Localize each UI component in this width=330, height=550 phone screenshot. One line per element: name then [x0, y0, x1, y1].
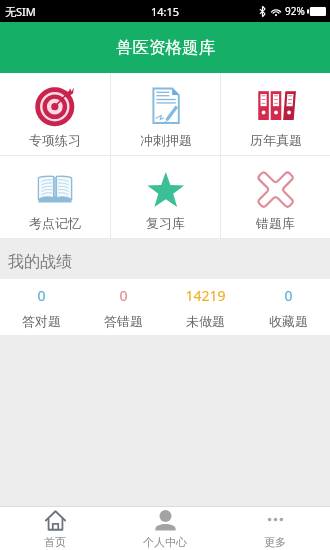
button[interactable]: More [220, 507, 330, 549]
button[interactable]: 兽医资格题库 [0, 22, 330, 73]
button[interactable]: 0 [82, 279, 164, 329]
staticText: 错题库 [256, 215, 295, 231]
staticText: 0 [37, 286, 46, 305]
staticText: 考点记忆 [29, 215, 81, 231]
staticText: 个人中心 [143, 535, 187, 549]
staticText: 首页 [44, 535, 66, 549]
staticText: 未做题 [186, 313, 225, 329]
button[interactable]: 错题库 [221, 156, 330, 231]
staticText: 0 [119, 286, 128, 305]
button[interactable]: 历年真题 [221, 73, 330, 148]
staticText: 14219 [185, 286, 226, 305]
button[interactable]: 考点记忆 [0, 156, 110, 231]
staticText: 冲刺押题 [140, 132, 192, 148]
button[interactable]: 0 [247, 279, 330, 329]
button[interactable]: Home [0, 507, 110, 549]
button[interactable]: Profile [110, 507, 220, 549]
staticText: 复习库 [146, 215, 185, 231]
button[interactable]: 复习库 [111, 156, 220, 231]
button[interactable]: 专项练习 [0, 73, 110, 148]
staticText: 专项练习 [29, 132, 81, 148]
staticText: 答对题 [22, 313, 61, 329]
staticText: 14:15 [151, 4, 180, 19]
staticText: 更多 [264, 535, 286, 549]
staticText: 我的战绩 [8, 252, 72, 272]
staticText: 历年真题 [250, 132, 302, 148]
staticText: 0 [284, 286, 293, 305]
button[interactable]: 0 [0, 279, 82, 329]
staticText: 收藏题 [269, 313, 308, 329]
staticText: 92% [285, 4, 305, 18]
button[interactable]: 冲刺押题 [111, 73, 220, 148]
staticText: 无SIM [5, 4, 36, 19]
staticText: 答错题 [104, 313, 143, 329]
button[interactable]: 14219 [164, 279, 247, 329]
staticText: 兽医资格题库 [116, 37, 215, 58]
